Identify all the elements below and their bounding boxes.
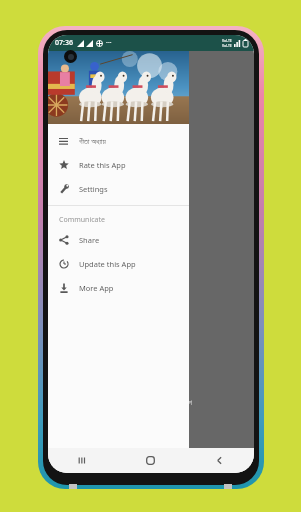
button[interactable]: Chapters xyxy=(48,129,189,153)
staticText: ··· xyxy=(106,38,112,48)
button[interactable] xyxy=(48,75,254,99)
staticText: যোগ xyxy=(182,399,192,406)
other: Settings xyxy=(59,184,69,194)
button[interactable] xyxy=(48,219,254,243)
staticText: Share xyxy=(79,235,100,245)
button[interactable] xyxy=(48,363,254,387)
staticText: Communicate xyxy=(59,215,105,225)
button[interactable]: Recents xyxy=(48,448,116,473)
button[interactable] xyxy=(48,195,254,219)
button[interactable]: Update this App xyxy=(48,252,189,276)
staticText: VoLTE xyxy=(222,38,232,43)
staticText: VoLTE xyxy=(222,43,232,48)
button[interactable]: Settings xyxy=(48,177,189,201)
staticText: গীতা অধ্যায় xyxy=(79,136,106,146)
staticText: Update this App xyxy=(79,259,136,269)
button[interactable] xyxy=(48,147,254,171)
other: Rate this App xyxy=(59,160,69,170)
button[interactable] xyxy=(48,315,254,339)
button[interactable]: Back xyxy=(185,448,254,473)
other: Update this App xyxy=(59,259,69,269)
staticText: More App xyxy=(79,283,114,293)
button[interactable] xyxy=(48,243,254,267)
other: Share xyxy=(59,235,69,245)
staticText: Settings xyxy=(79,184,108,194)
button[interactable] xyxy=(48,267,254,291)
staticText: Rate this App xyxy=(79,160,126,170)
button[interactable] xyxy=(48,387,254,411)
button[interactable]: Rate this App xyxy=(48,153,189,177)
button[interactable] xyxy=(48,411,254,435)
button[interactable] xyxy=(48,123,254,147)
button[interactable]: More App xyxy=(48,276,189,300)
button[interactable] xyxy=(48,339,254,363)
button[interactable] xyxy=(48,171,254,195)
button[interactable] xyxy=(48,291,254,315)
other: More App xyxy=(59,283,69,293)
button[interactable] xyxy=(48,51,254,75)
other: Chapters xyxy=(59,137,68,146)
button[interactable]: Home xyxy=(116,448,185,473)
button[interactable] xyxy=(48,99,254,123)
button[interactable]: Share xyxy=(48,228,189,252)
staticText: 07:36 xyxy=(55,38,73,48)
